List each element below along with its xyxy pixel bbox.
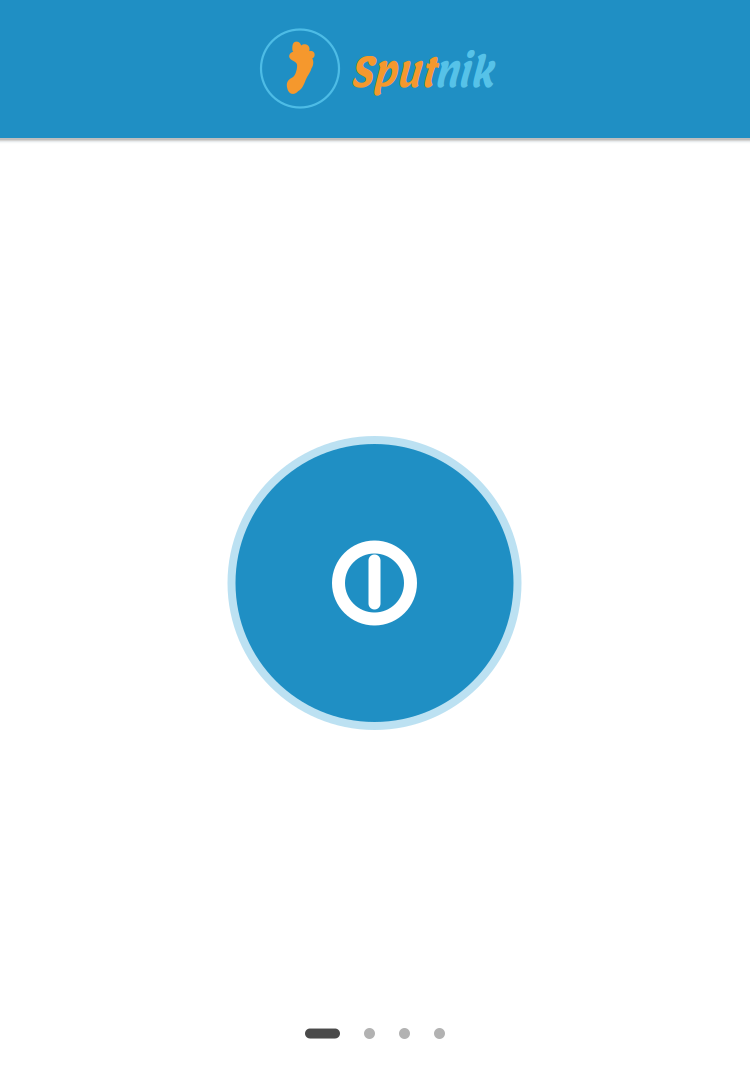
staticText: nik xyxy=(440,29,520,115)
staticText: Sput xyxy=(323,29,440,115)
button[interactable]: Start tracking xyxy=(227,436,521,730)
